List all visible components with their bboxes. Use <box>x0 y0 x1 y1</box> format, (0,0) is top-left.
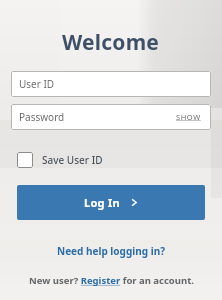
staticText: Save User ID <box>42 153 103 167</box>
button[interactable]: Need help logging in? <box>57 244 165 258</box>
button[interactable]: SHOW <box>176 112 201 122</box>
staticText: User ID <box>19 77 55 91</box>
staticText: New user? Register for an account. <box>29 274 194 287</box>
button[interactable]: Password <box>11 104 211 130</box>
staticText: SHOW <box>176 112 201 122</box>
staticText: Password <box>19 110 176 124</box>
staticText: Need help logging in? <box>57 244 165 258</box>
button[interactable]: New user? Register for an account. <box>29 274 194 287</box>
staticText: Welcome <box>62 28 160 57</box>
button[interactable]: Log In <box>17 185 205 220</box>
button[interactable]: Save User ID <box>17 152 103 168</box>
button[interactable]: User ID <box>11 71 211 97</box>
staticText: Log In <box>84 195 121 210</box>
